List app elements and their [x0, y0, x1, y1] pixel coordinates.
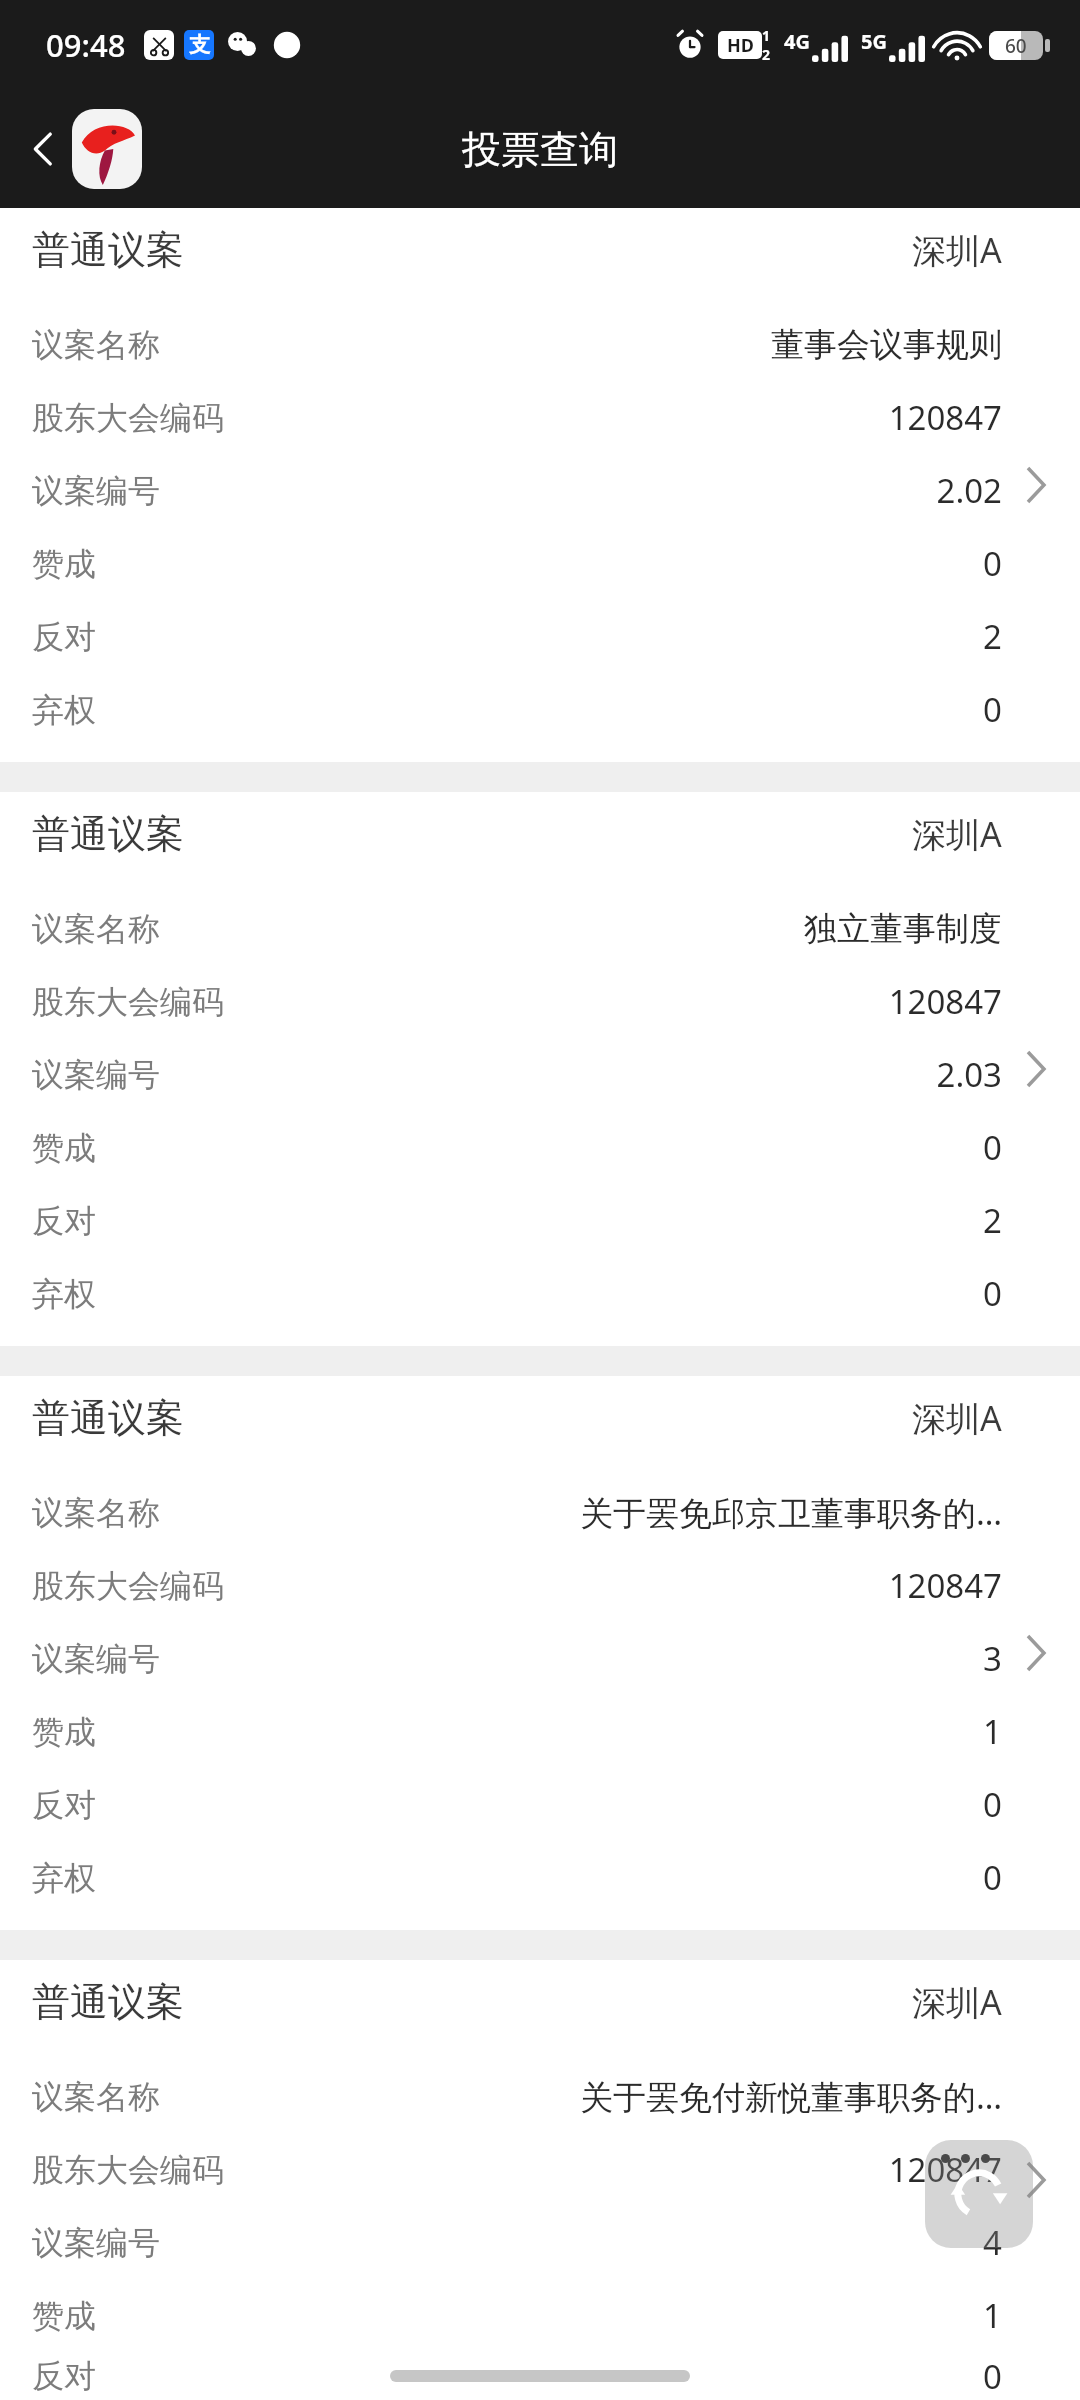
staticText: 投票查询: [462, 125, 618, 174]
button[interactable]: Refresh: [925, 2140, 1033, 2248]
staticText: 0: [983, 1271, 1002, 1316]
staticText: 120847: [888, 1563, 1002, 1608]
staticText: 深圳A: [912, 227, 1002, 273]
staticText: 弃权: [32, 1858, 96, 1898]
button[interactable]: 普通议案: [0, 1376, 1080, 1930]
staticText: 议案编号: [32, 1055, 160, 1095]
staticText: 2: [983, 614, 1002, 659]
staticText: 0: [983, 2354, 1002, 2399]
staticText: 1: [762, 26, 771, 45]
staticText: 反对: [32, 2356, 96, 2396]
staticText: 4G: [784, 28, 810, 55]
staticText: 0: [983, 1855, 1002, 1900]
staticText: 0: [983, 1125, 1002, 1170]
staticText: 股东大会编码: [32, 1566, 224, 1606]
staticText: 2.02: [936, 468, 1002, 513]
button[interactable]: 普通议案: [0, 1960, 1080, 2400]
staticText: 深圳A: [912, 1395, 1002, 1441]
staticText: 赞成: [32, 1712, 96, 1752]
staticText: 赞成: [32, 1128, 96, 1168]
button[interactable]: 普通议案: [0, 208, 1080, 762]
staticText: 议案编号: [32, 471, 160, 511]
staticText: 1: [983, 2293, 1002, 2338]
staticText: 董事会议事规则: [771, 324, 1002, 366]
staticText: 深圳A: [912, 811, 1002, 857]
staticText: 关于罢免付新悦董事职务的…: [579, 2074, 1002, 2119]
staticText: 议案编号: [32, 2223, 160, 2263]
staticText: 09:48: [46, 24, 126, 66]
button[interactable]: 普通议案: [0, 792, 1080, 1346]
staticText: 0: [983, 687, 1002, 732]
button[interactable]: Back: [0, 99, 152, 199]
staticText: 独立董事制度: [804, 908, 1002, 950]
staticText: 弃权: [32, 690, 96, 730]
staticText: 支: [189, 32, 210, 58]
staticText: 反对: [32, 617, 96, 657]
staticText: 弃权: [32, 1274, 96, 1314]
staticText: 普通议案: [32, 810, 184, 858]
staticText: 1: [983, 1709, 1002, 1754]
staticText: 3: [983, 1636, 1002, 1681]
staticText: 4: [983, 2220, 1002, 2265]
staticText: 普通议案: [32, 1394, 184, 1442]
staticText: 普通议案: [32, 226, 184, 274]
staticText: 5G: [861, 28, 887, 55]
staticText: 深圳A: [912, 1979, 1002, 2025]
staticText: 0: [983, 541, 1002, 586]
staticText: 普通议案: [32, 1978, 184, 2026]
staticText: 议案名称: [32, 325, 160, 365]
staticText: 60: [1005, 33, 1027, 59]
staticText: 议案编号: [32, 1639, 160, 1679]
staticText: 120847: [888, 2147, 1002, 2192]
staticText: 关于罢免邱京卫董事职务的…: [579, 1490, 1002, 1535]
staticText: 赞成: [32, 2296, 96, 2336]
staticText: 赞成: [32, 544, 96, 584]
staticText: 2.03: [936, 1052, 1002, 1097]
staticText: 2: [983, 1198, 1002, 1243]
staticText: HD: [727, 33, 754, 58]
staticText: 股东大会编码: [32, 982, 224, 1022]
staticText: 议案名称: [32, 2077, 160, 2117]
staticText: 反对: [32, 1201, 96, 1241]
staticText: 2: [762, 45, 771, 64]
staticText: 股东大会编码: [32, 2150, 224, 2190]
staticText: 议案名称: [32, 1493, 160, 1533]
staticText: 0: [983, 1782, 1002, 1827]
staticText: 120847: [888, 979, 1002, 1024]
staticText: 股东大会编码: [32, 398, 224, 438]
staticText: 反对: [32, 1785, 96, 1825]
staticText: 议案名称: [32, 909, 160, 949]
staticText: 120847: [888, 395, 1002, 440]
